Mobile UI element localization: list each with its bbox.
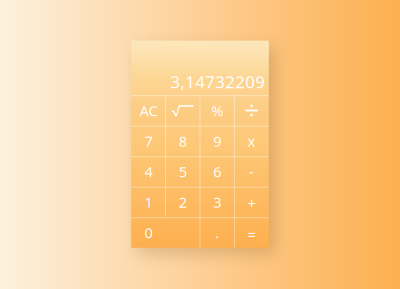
button[interactable]: %: [200, 95, 234, 126]
staticText: =: [248, 224, 256, 244]
staticText: 8: [179, 131, 187, 151]
staticText: -: [249, 161, 254, 181]
button[interactable]: 9: [200, 126, 234, 156]
staticText: 5: [179, 161, 187, 181]
button[interactable]: 2: [166, 187, 200, 217]
staticText: 4: [144, 161, 152, 181]
button[interactable]: 8: [166, 126, 200, 156]
staticText: 7: [144, 131, 152, 151]
button[interactable]: -: [234, 156, 269, 187]
staticText: x: [248, 131, 256, 151]
staticText: .: [215, 223, 219, 243]
button[interactable]: .: [200, 217, 234, 248]
button[interactable]: 1: [131, 187, 166, 217]
staticText: 2: [179, 192, 187, 212]
button[interactable]: +: [234, 187, 269, 217]
staticText: 0: [144, 223, 152, 243]
staticText: 9: [213, 131, 221, 151]
button[interactable]: 5: [166, 156, 200, 187]
button[interactable]: AC: [131, 95, 166, 126]
staticText: 3: [213, 192, 221, 212]
button[interactable]: x: [234, 126, 269, 156]
staticText: %: [211, 100, 223, 120]
button[interactable]: 7: [131, 126, 166, 156]
button[interactable]: =: [234, 217, 269, 248]
staticText: 1: [144, 192, 152, 212]
staticText: 3,14732209: [170, 70, 265, 93]
button[interactable]: 4: [131, 156, 166, 187]
button[interactable]: 0: [131, 217, 200, 248]
button[interactable]: Square root: [166, 95, 200, 126]
staticText: 6: [213, 161, 221, 181]
staticText: AC: [139, 100, 157, 120]
button[interactable]: 6: [200, 156, 234, 187]
button[interactable]: 3: [200, 187, 234, 217]
button[interactable]: Divide: [234, 95, 269, 126]
staticText: +: [248, 193, 256, 213]
